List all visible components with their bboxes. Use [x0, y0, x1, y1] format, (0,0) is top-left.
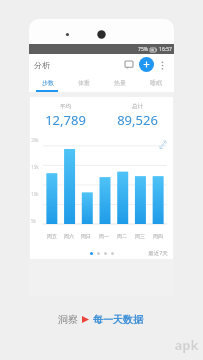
staticText: 热量 [114, 79, 126, 87]
staticText: 75% [138, 46, 148, 53]
button[interactable]: 睡眠 [138, 75, 174, 90]
staticText: 平均 [60, 103, 71, 110]
button[interactable]: 热量 [102, 75, 138, 90]
staticText: apk [174, 336, 199, 354]
button[interactable]: Add [139, 57, 154, 72]
staticText: 体重 [78, 79, 90, 87]
staticText: 每一天数据 [93, 313, 143, 326]
staticText: 周一 [99, 233, 109, 239]
button[interactable]: 体重 [66, 75, 102, 90]
staticText: 总计 [132, 103, 143, 110]
staticText: 洞察 [58, 313, 78, 326]
staticText: 周二 [117, 233, 127, 239]
button[interactable]: More options [155, 58, 169, 72]
button[interactable]: 总计 [101, 103, 173, 129]
staticText: 最近7天 [148, 249, 168, 257]
staticText: 周四 [153, 233, 163, 239]
staticText: 步数 [42, 79, 54, 87]
staticText: 睡眠 [150, 79, 162, 87]
staticText: 20k [31, 137, 39, 143]
staticText: 周六 [64, 233, 74, 239]
staticText: 周五 [47, 233, 57, 239]
staticText: 16:57 [159, 46, 172, 53]
staticText: 15k [31, 164, 39, 170]
staticText: 周日 [81, 233, 91, 239]
staticText: 89,526 [117, 111, 158, 129]
button[interactable]: 步数 [29, 75, 66, 90]
staticText: 分析 [34, 60, 50, 70]
button[interactable]: Messages [121, 57, 137, 73]
button[interactable]: 洞察 [58, 313, 143, 326]
staticText: 10k [31, 191, 39, 197]
staticText: 周三 [135, 233, 145, 239]
staticText: 5k [31, 218, 36, 224]
staticText: 12,789 [45, 111, 86, 129]
button[interactable]: 平均 [30, 103, 101, 129]
